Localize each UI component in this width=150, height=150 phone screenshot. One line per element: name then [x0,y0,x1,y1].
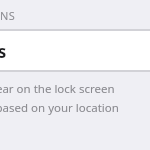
staticText: Notifications [0,40,16,63]
staticText: and suggestions are based on your locati… [0,100,119,116]
staticText: Notifications will appear on the lock sc… [0,81,115,97]
staticText: NOTIFICATIONS [0,8,18,23]
button[interactable]: Notifications [0,31,150,70]
